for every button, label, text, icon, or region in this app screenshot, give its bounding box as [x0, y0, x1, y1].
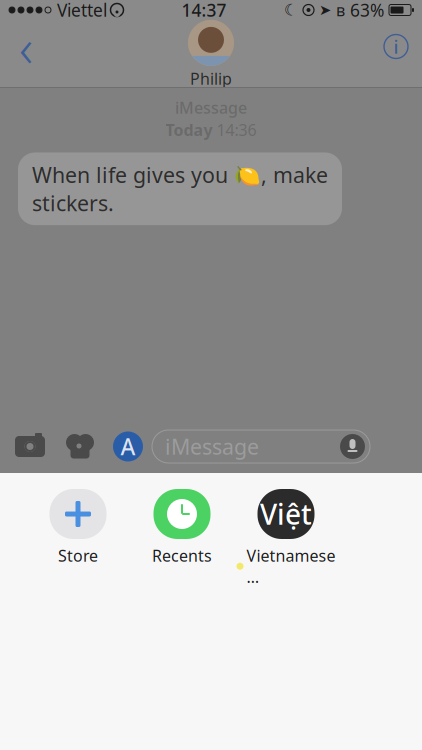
staticText: Recents — [152, 545, 212, 566]
staticText: Today — [165, 119, 212, 140]
staticText: ʙ — [336, 0, 345, 21]
staticText: iMessage — [165, 432, 259, 461]
staticText: A — [120, 431, 135, 461]
button[interactable]: Message field — [152, 430, 370, 463]
staticText: Vietnamese… — [246, 545, 335, 587]
button[interactable]: Store — [26, 489, 130, 566]
staticText: ☾ — [284, 1, 298, 19]
button[interactable]: Recents — [130, 489, 234, 566]
button[interactable]: Details — [370, 22, 422, 70]
staticText: When life gives you 🍋, make stickers. — [32, 160, 328, 217]
staticText: Philip — [190, 68, 232, 89]
button[interactable]: Camera — [4, 420, 56, 472]
staticText: Viettel — [57, 0, 107, 21]
button[interactable]: Apps — [104, 420, 152, 472]
staticText: Store — [58, 545, 98, 566]
staticText: i — [393, 34, 398, 59]
button[interactable]: Việt — [234, 489, 338, 587]
staticText: ➤ — [319, 2, 331, 18]
button[interactable]: Back — [0, 22, 52, 70]
button[interactable]: Digital Touch — [56, 420, 104, 472]
staticText: 14:36 — [216, 119, 256, 140]
staticText: ‹ — [19, 11, 33, 82]
staticText: 63% — [350, 0, 384, 21]
staticText: 14:37 — [181, 0, 226, 21]
staticText: iMessage — [175, 97, 247, 118]
staticText: Việt — [260, 495, 312, 533]
